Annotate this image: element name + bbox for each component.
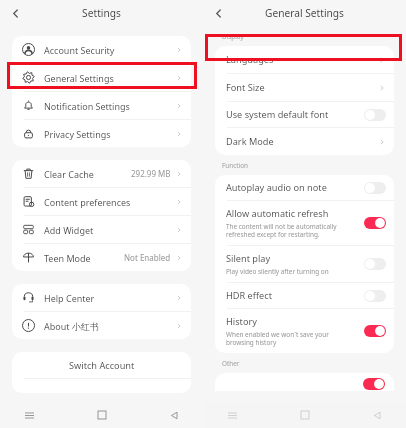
button[interactable]: HDR effect bbox=[215, 283, 394, 308]
button[interactable]: Back bbox=[368, 406, 386, 424]
button[interactable]: Home bbox=[296, 406, 314, 424]
staticText: The content will not be automatically re… bbox=[226, 222, 358, 239]
staticText: Not Enabled bbox=[124, 252, 171, 263]
staticText: About 小红书 bbox=[44, 320, 99, 332]
button[interactable]: Add Widget bbox=[12, 216, 191, 243]
staticText: Add Widget bbox=[44, 224, 94, 236]
staticText: Settings bbox=[82, 6, 121, 20]
staticText: History bbox=[226, 315, 257, 328]
button[interactable]: Switch off bbox=[364, 258, 386, 270]
button[interactable]: Switch on bbox=[363, 378, 385, 390]
staticText: Content preferences bbox=[44, 196, 131, 208]
staticText: Clear Cache bbox=[44, 168, 94, 180]
button[interactable]: Clear Cache bbox=[12, 160, 191, 187]
staticText: Teen Mode bbox=[44, 252, 91, 264]
button[interactable]: Recents bbox=[223, 406, 241, 424]
staticText: When enabled we won´t save your browsing… bbox=[226, 330, 358, 347]
button[interactable]: Switch Account bbox=[12, 352, 191, 378]
staticText: Display bbox=[222, 32, 244, 41]
button[interactable]: Silent play bbox=[215, 246, 394, 282]
button[interactable]: Dark Mode bbox=[215, 128, 394, 155]
button[interactable]: General Settings bbox=[12, 64, 191, 91]
button[interactable]: Notification Settings bbox=[12, 92, 191, 119]
button[interactable]: Switch off bbox=[364, 109, 386, 121]
button[interactable]: Home bbox=[93, 406, 111, 424]
staticText: Account Security bbox=[44, 44, 115, 56]
staticText: Font Size bbox=[226, 81, 265, 94]
staticText: Help Center bbox=[44, 292, 95, 304]
button[interactable]: Allow automatic refresh bbox=[215, 201, 394, 245]
button[interactable]: Back bbox=[5, 3, 25, 23]
button[interactable]: Help Center bbox=[12, 284, 191, 311]
button[interactable]: Switch off bbox=[364, 182, 386, 194]
button[interactable]: Switch off bbox=[364, 290, 386, 302]
button[interactable]: Teen Mode bbox=[12, 244, 191, 271]
button[interactable]: Switch on bbox=[364, 217, 386, 229]
staticText: Notification Settings bbox=[44, 100, 130, 112]
staticText: Silent play bbox=[226, 252, 271, 265]
staticText: Languages bbox=[226, 53, 274, 66]
staticText: Use system default font bbox=[226, 108, 329, 121]
staticText: Function bbox=[222, 161, 249, 170]
staticText: Autoplay audio on note bbox=[226, 181, 327, 194]
button[interactable]: Switch on bbox=[364, 325, 386, 337]
button[interactable]: Recents bbox=[20, 406, 38, 424]
button[interactable]: Back bbox=[165, 406, 183, 424]
button[interactable]: Back bbox=[208, 3, 228, 23]
staticText: HDR effect bbox=[226, 289, 273, 302]
button[interactable]: Privacy Settings bbox=[12, 120, 191, 147]
staticText: General Settings bbox=[265, 6, 344, 20]
staticText: General Settings bbox=[44, 72, 114, 84]
button[interactable]: History bbox=[215, 309, 394, 353]
staticText: Dark Mode bbox=[226, 135, 274, 148]
button[interactable]: Content preferences bbox=[12, 188, 191, 215]
staticText: 292.99 MB bbox=[131, 168, 171, 179]
staticText: Allow automatic refresh bbox=[226, 207, 329, 220]
staticText: Privacy Settings bbox=[44, 128, 111, 140]
button[interactable]: Languages bbox=[215, 46, 394, 73]
button[interactable]: About 小红书 bbox=[12, 312, 191, 339]
staticText: Switch Account bbox=[69, 359, 135, 372]
button[interactable]: Use system default font bbox=[215, 102, 394, 127]
button[interactable]: Font Size bbox=[215, 74, 394, 101]
button[interactable]: Account Security bbox=[12, 36, 191, 63]
button[interactable]: Autoplay audio on note bbox=[215, 175, 394, 200]
staticText: Play video silently after turning on bbox=[226, 267, 329, 276]
staticText: Other bbox=[222, 359, 240, 368]
